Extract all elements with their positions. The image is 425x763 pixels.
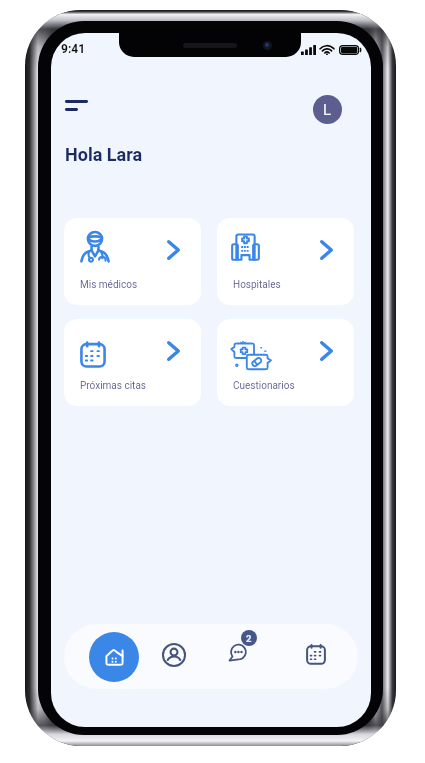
button[interactable]: Messages	[209, 624, 267, 689]
staticText: Próximas citas	[80, 380, 146, 392]
button[interactable]: Hospitales	[217, 218, 354, 305]
staticText: Mis médicos	[80, 279, 138, 291]
button[interactable]: Calendar	[286, 624, 346, 689]
button[interactable]: Profile	[144, 624, 204, 689]
button[interactable]: Profile	[313, 95, 342, 124]
staticText: Hola Lara	[65, 144, 143, 165]
staticText: 9:41	[61, 42, 86, 56]
button[interactable]: Home	[76, 624, 151, 689]
button[interactable]: Mis médicos	[64, 218, 201, 305]
button[interactable]: Próximas citas	[64, 319, 201, 406]
staticText: 2	[246, 633, 252, 644]
staticText: Hospitales	[233, 279, 281, 291]
button[interactable]: Menu	[54, 86, 96, 120]
button[interactable]: Cuestionarios	[217, 319, 354, 406]
staticText: L	[323, 101, 332, 119]
staticText: Cuestionarios	[233, 380, 295, 392]
